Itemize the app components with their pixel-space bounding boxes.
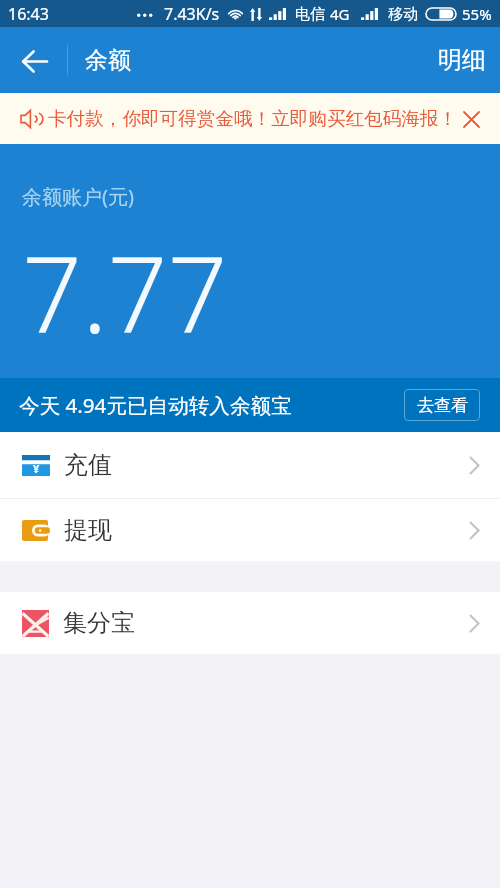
staticText: 卡付款，你即可得赏金哦！立即购买红包码海报！ [48, 107, 458, 130]
staticText: 7.43K/s [164, 3, 220, 25]
staticText: 16:43 [8, 3, 49, 25]
staticText: 7.77 [22, 221, 228, 364]
staticText: 集分宝 [63, 608, 135, 638]
staticText: 明细 [438, 45, 486, 75]
staticText: 55% [462, 4, 492, 24]
button[interactable]: ¥ [0, 432, 500, 498]
staticText: 提现 [64, 515, 112, 545]
button[interactable]: 提现 [0, 499, 500, 561]
staticText: 4G [330, 4, 350, 24]
staticText: 充值 [64, 450, 112, 480]
staticText: 移动 [388, 5, 418, 24]
button[interactable]: 集分宝 [0, 592, 500, 654]
staticText: 去查看 [417, 395, 468, 416]
staticText: 今天 4.94元已自动转入余额宝 [19, 391, 292, 419]
button[interactable]: 明细 [422, 27, 500, 93]
button[interactable]: 关闭 [458, 104, 484, 134]
staticText: 余额账户(元) [22, 183, 134, 210]
staticText: 余额 [85, 46, 131, 75]
button[interactable]: 返回 [0, 27, 67, 93]
staticText: 电信 [295, 5, 325, 24]
staticText: ¥ [33, 461, 40, 476]
button[interactable]: 去查看 [404, 389, 480, 421]
